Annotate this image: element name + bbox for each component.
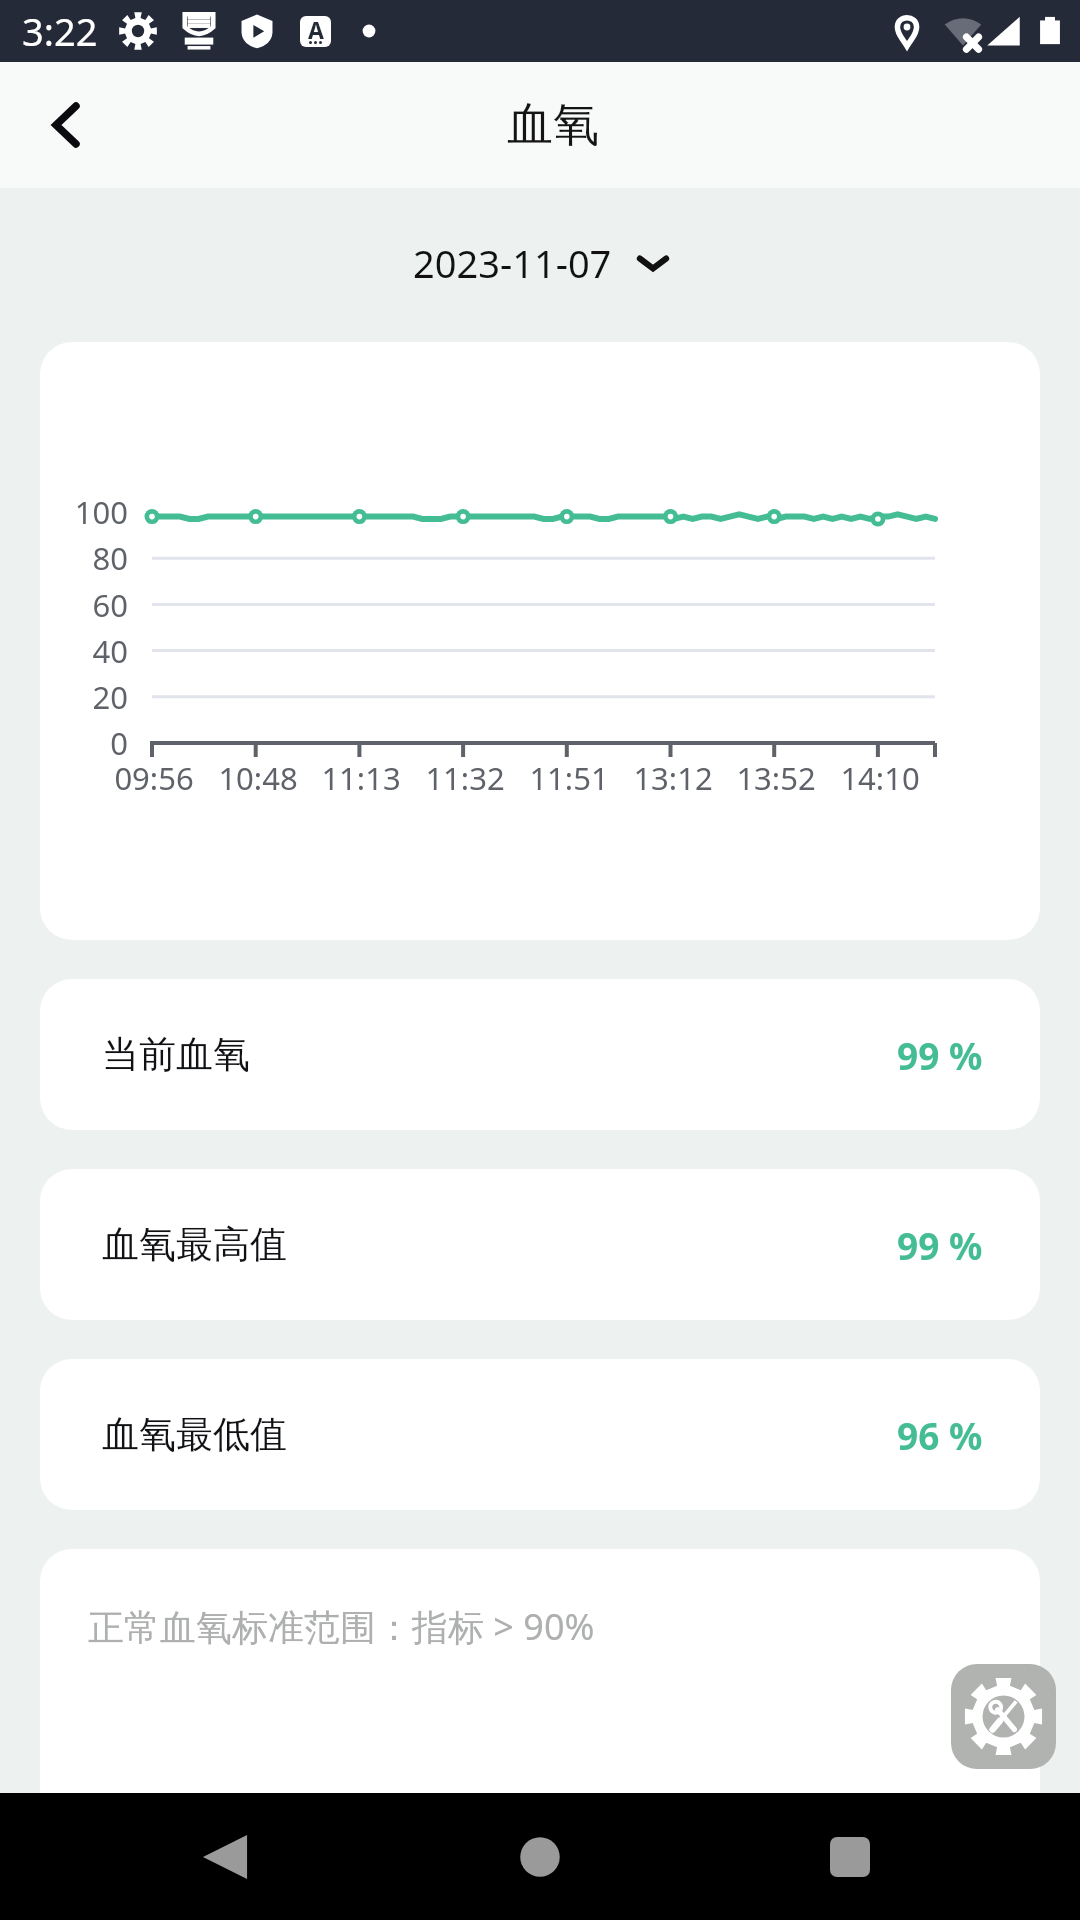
- staticText: 2023-11-07: [413, 237, 612, 289]
- button[interactable]: Home: [502, 1819, 578, 1895]
- staticText: 40: [40, 630, 128, 672]
- staticText: 13:52: [716, 757, 836, 799]
- staticText: 60: [40, 584, 128, 626]
- staticText: 99 %: [897, 1030, 983, 1080]
- staticText: 11:51: [509, 757, 629, 799]
- button[interactable]: 血氧最低值: [40, 1359, 1040, 1510]
- staticText: 血氧: [507, 96, 599, 154]
- staticText: 96 %: [897, 1410, 983, 1460]
- staticText: 100: [40, 491, 128, 533]
- staticText: 20: [40, 676, 128, 718]
- staticText: 99 %: [897, 1220, 983, 1270]
- button[interactable]: 2023-11-07: [405, 232, 676, 294]
- staticText: 血氧最高值: [102, 1221, 287, 1268]
- staticText: 10:48: [198, 757, 318, 799]
- staticText: 80: [40, 537, 128, 579]
- staticText: 血氧最低值: [102, 1411, 287, 1458]
- staticText: 3:22: [22, 5, 98, 57]
- staticText: 当前血氧: [102, 1031, 250, 1078]
- staticText: 14:10: [820, 757, 940, 799]
- button[interactable]: Recents: [812, 1819, 888, 1895]
- staticText: 0: [40, 722, 128, 764]
- button[interactable]: 血氧最高值: [40, 1169, 1040, 1320]
- staticText: 11:13: [301, 757, 421, 799]
- button[interactable]: Settings: [951, 1664, 1056, 1769]
- button[interactable]: 当前血氧: [40, 979, 1040, 1130]
- staticText: 11:32: [405, 757, 525, 799]
- staticText: 09:56: [94, 757, 214, 799]
- button[interactable]: Back: [0, 62, 126, 188]
- staticText: A: [308, 16, 324, 45]
- staticText: 13:12: [613, 757, 733, 799]
- button[interactable]: System back: [187, 1819, 263, 1895]
- staticText: 正常血氧标准范围：指标 > 90%: [88, 1602, 595, 1651]
